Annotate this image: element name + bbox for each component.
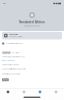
staticText: the narrow street (2, 60, 14, 61)
staticText: Translated Edition (19, 20, 45, 24)
staticText: Translated by M. Alvarez (6, 43, 23, 44)
staticText: Now reading (9, 34, 18, 35)
staticText: Chapter four of twelve (9, 36, 23, 38)
button[interactable]: Profile (48, 88, 64, 95)
staticText: NOTES (3, 79, 8, 81)
button[interactable]: Read (0, 88, 16, 95)
staticText: four of twelve (12, 52, 20, 54)
staticText: CHAPTER (3, 52, 10, 54)
button[interactable]: Translated by M. Alvarez (0, 41, 64, 46)
button[interactable]: Library (16, 88, 32, 95)
button[interactable]: Search (32, 88, 48, 95)
staticText: one by one, letting in the sea air and t… (2, 68, 26, 70)
button[interactable]: Now reading (2, 32, 62, 39)
staticText: 9:41 (3, 3, 6, 4)
staticText: noise of the harbour below. (2, 73, 20, 75)
staticText: and the shutters opened (2, 64, 19, 66)
staticText: a collection of short stories (23, 25, 40, 27)
staticText: The morning came slowly across (2, 56, 25, 58)
